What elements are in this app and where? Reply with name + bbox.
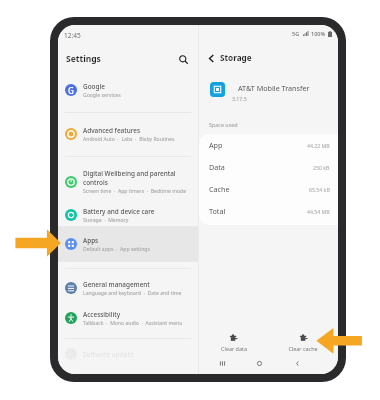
staticText: Digital Wellbeing and parental <box>83 169 176 178</box>
staticText: 65.54 kB <box>309 186 330 193</box>
staticText: Data <box>209 162 225 172</box>
button[interactable]: Back <box>203 50 220 67</box>
staticText: Screen time · App timers · Bedtime mode <box>83 188 187 195</box>
staticText: Cache <box>209 184 230 194</box>
staticText: 12:45 <box>64 31 81 40</box>
button[interactable]: G <box>58 77 198 103</box>
button[interactable]: Search <box>175 51 192 68</box>
button[interactable]: Home <box>251 355 267 371</box>
button[interactable]: App <box>199 134 338 156</box>
staticText: 100% <box>311 30 326 37</box>
button[interactable]: Apps <box>58 226 198 262</box>
staticText: Settings <box>66 53 101 65</box>
staticText: 44.54 MB <box>307 208 330 215</box>
button[interactable]: General management <box>58 275 198 301</box>
button[interactable]: Accessibility <box>58 305 198 331</box>
staticText: Accessibility <box>83 310 121 319</box>
button[interactable]: Clear data <box>199 326 268 358</box>
button[interactable]: Advanced features <box>58 121 198 147</box>
staticText: 250 kB <box>313 164 330 171</box>
staticText: 5G <box>292 30 300 37</box>
staticText: controls <box>83 178 108 187</box>
button[interactable]: Digital Wellbeing and parental <box>58 166 198 198</box>
staticText: Android Auto · Labs · Bixby Routines <box>83 136 175 143</box>
staticText: Google <box>83 82 105 91</box>
staticText: AT&T Mobile Transfer <box>238 83 310 93</box>
staticText: Total <box>209 206 226 216</box>
staticText: App <box>209 140 223 150</box>
button[interactable]: Recents <box>214 355 230 371</box>
staticText: Software update <box>83 350 134 359</box>
staticText: Storage · Memory <box>83 217 129 224</box>
button[interactable]: Total <box>199 200 338 222</box>
button[interactable]: Data <box>199 156 338 178</box>
staticText: G <box>68 85 74 96</box>
staticText: Battery and device care <box>83 207 155 216</box>
staticText: Talkback · Mono audio · Assistant menu <box>83 320 183 327</box>
staticText: Space used <box>209 121 238 128</box>
staticText: Language and keyboard · Date and time <box>83 290 182 297</box>
staticText: Storage <box>220 52 252 63</box>
staticText: Advanced features <box>83 126 141 135</box>
staticText: Apps <box>83 236 99 245</box>
button[interactable]: Cache <box>199 178 338 200</box>
staticText: Clear data <box>221 345 247 352</box>
staticText: Default apps · App settings <box>83 246 150 253</box>
button[interactable]: Back <box>289 355 305 371</box>
button[interactable]: Clear cache <box>268 326 338 358</box>
staticText: General management <box>83 280 150 289</box>
staticText: 44.22 MB <box>307 142 330 149</box>
staticText: Clear cache <box>288 345 318 352</box>
staticText: Google services <box>83 92 121 99</box>
button[interactable]: Battery and device care <box>58 202 198 228</box>
staticText: 3.17.5 <box>232 95 247 102</box>
